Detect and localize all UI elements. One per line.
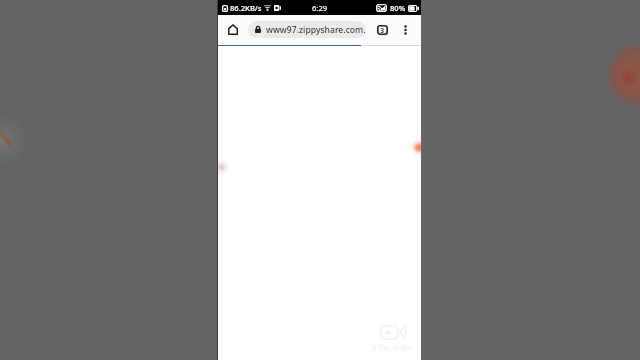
staticText: 6:29 — [312, 3, 328, 13]
staticText: 86.2KB/s — [230, 3, 262, 13]
staticText: 3 — [380, 25, 385, 35]
button[interactable]: Tabs — [372, 15, 393, 44]
button[interactable]: Home — [218, 15, 248, 44]
staticText: www97.zippyshare.com. — [266, 24, 366, 36]
staticText: 80% — [390, 3, 406, 13]
staticText: V Recorder — [372, 342, 413, 353]
button[interactable]: More options — [393, 15, 421, 44]
button[interactable]: www97.zippyshare.com. — [248, 21, 366, 38]
